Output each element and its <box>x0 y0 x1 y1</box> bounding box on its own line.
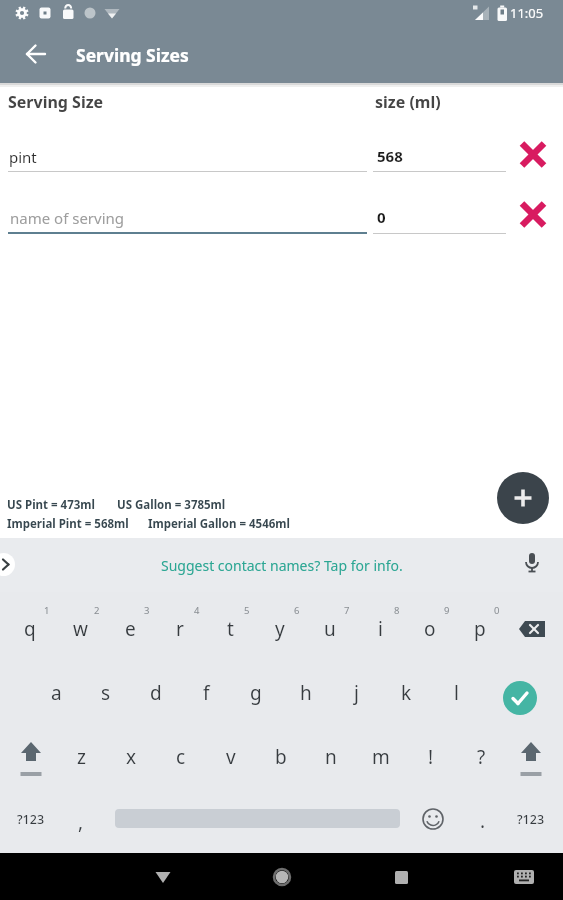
button[interactable]: l <box>431 676 481 710</box>
staticText: Suggest contact names? Tap for info. <box>161 556 403 575</box>
staticText: r <box>176 616 184 642</box>
staticText: 3 <box>144 604 150 617</box>
button[interactable]: v <box>206 740 256 774</box>
staticText: 4 <box>194 604 200 617</box>
staticText: i <box>378 616 383 642</box>
staticText: name of serving <box>10 208 125 228</box>
button[interactable]: n <box>306 740 356 774</box>
staticText: v <box>226 744 236 770</box>
button[interactable] <box>497 472 549 524</box>
button[interactable]: Suggest contact names? Tap for info. <box>0 538 563 592</box>
button[interactable]: e <box>105 612 155 646</box>
button[interactable]: a <box>31 676 81 710</box>
button[interactable]: z <box>56 740 106 774</box>
staticText: 8 <box>394 604 400 617</box>
button[interactable] <box>522 552 542 576</box>
staticText: d <box>150 680 162 706</box>
button[interactable]: p <box>455 612 505 646</box>
staticText: pint <box>9 147 37 167</box>
staticText: s <box>101 680 111 706</box>
staticText: US Pint = 473ml <box>7 497 95 513</box>
staticText: 0 <box>377 207 386 227</box>
staticText: u <box>324 616 336 642</box>
staticText: 568 <box>377 146 403 166</box>
button[interactable]: b <box>256 740 306 774</box>
button[interactable]: x <box>106 740 156 774</box>
staticText: 11:05 <box>510 4 544 22</box>
staticText: . <box>480 808 486 834</box>
staticText: 1 <box>44 604 50 617</box>
staticText: e <box>125 616 136 642</box>
staticText: Imperial Gallon = 4546ml <box>148 516 290 532</box>
staticText: k <box>401 680 412 706</box>
button[interactable]: o <box>405 612 455 646</box>
staticText: z <box>77 744 86 770</box>
button[interactable] <box>518 201 548 231</box>
button[interactable]: y <box>255 612 305 646</box>
staticText: g <box>250 680 262 706</box>
staticText: size (ml) <box>375 91 441 113</box>
staticText: y <box>275 616 285 642</box>
staticText: f <box>203 680 210 706</box>
staticText: , <box>78 809 84 835</box>
staticText: ?123 <box>17 811 45 828</box>
button[interactable]: s <box>81 676 131 710</box>
staticText: q <box>24 616 36 642</box>
staticText: Serving Size <box>8 91 104 113</box>
staticText: 2 <box>94 604 100 617</box>
button[interactable]: ? <box>456 740 506 774</box>
staticText: 6 <box>294 604 300 617</box>
staticText: o <box>424 616 436 642</box>
staticText: ?123 <box>517 811 545 828</box>
button[interactable] <box>504 862 544 900</box>
staticText: 5 <box>244 604 250 617</box>
button[interactable]: r <box>155 612 205 646</box>
button[interactable]: w <box>55 612 105 646</box>
button[interactable] <box>421 807 445 831</box>
button[interactable] <box>503 681 537 715</box>
staticText: ? <box>477 744 486 770</box>
button[interactable] <box>376 862 424 900</box>
staticText: m <box>372 744 390 770</box>
staticText: w <box>73 616 88 642</box>
staticText: b <box>275 744 287 770</box>
staticText: a <box>51 680 62 706</box>
button[interactable]: t <box>205 612 255 646</box>
button[interactable] <box>509 613 555 645</box>
button[interactable]: u <box>305 612 355 646</box>
staticText: n <box>325 744 337 770</box>
staticText: c <box>176 744 186 770</box>
staticText: Serving Sizes <box>76 43 189 67</box>
staticText: US Gallon = 3785ml <box>117 497 226 513</box>
button[interactable]: i <box>355 612 405 646</box>
button[interactable] <box>518 141 548 171</box>
staticText: 9 <box>444 604 450 617</box>
staticText: x <box>126 744 137 770</box>
staticText: 0 <box>494 604 500 617</box>
button[interactable]: g <box>231 676 281 710</box>
button[interactable]: h <box>281 676 331 710</box>
button[interactable] <box>139 862 187 900</box>
staticText: t <box>227 616 234 642</box>
staticText: Imperial Pint = 568ml <box>7 516 129 532</box>
button[interactable]: c <box>156 740 206 774</box>
button[interactable]: k <box>381 676 431 710</box>
button[interactable] <box>257 862 305 900</box>
button[interactable] <box>516 738 546 778</box>
staticText: ! <box>428 744 434 770</box>
button[interactable]: m <box>356 740 406 774</box>
button[interactable]: ! <box>406 740 456 774</box>
button[interactable]: q <box>5 612 55 646</box>
button[interactable]: f <box>181 676 231 710</box>
button[interactable]: d <box>131 676 181 710</box>
staticText: l <box>454 680 459 706</box>
staticText: 7 <box>344 604 350 617</box>
button[interactable]: j <box>331 676 381 710</box>
staticText: j <box>354 680 359 706</box>
staticText: p <box>474 616 486 642</box>
staticText: h <box>300 680 312 706</box>
button[interactable] <box>14 33 58 77</box>
button[interactable] <box>16 738 46 778</box>
button[interactable] <box>0 553 15 576</box>
